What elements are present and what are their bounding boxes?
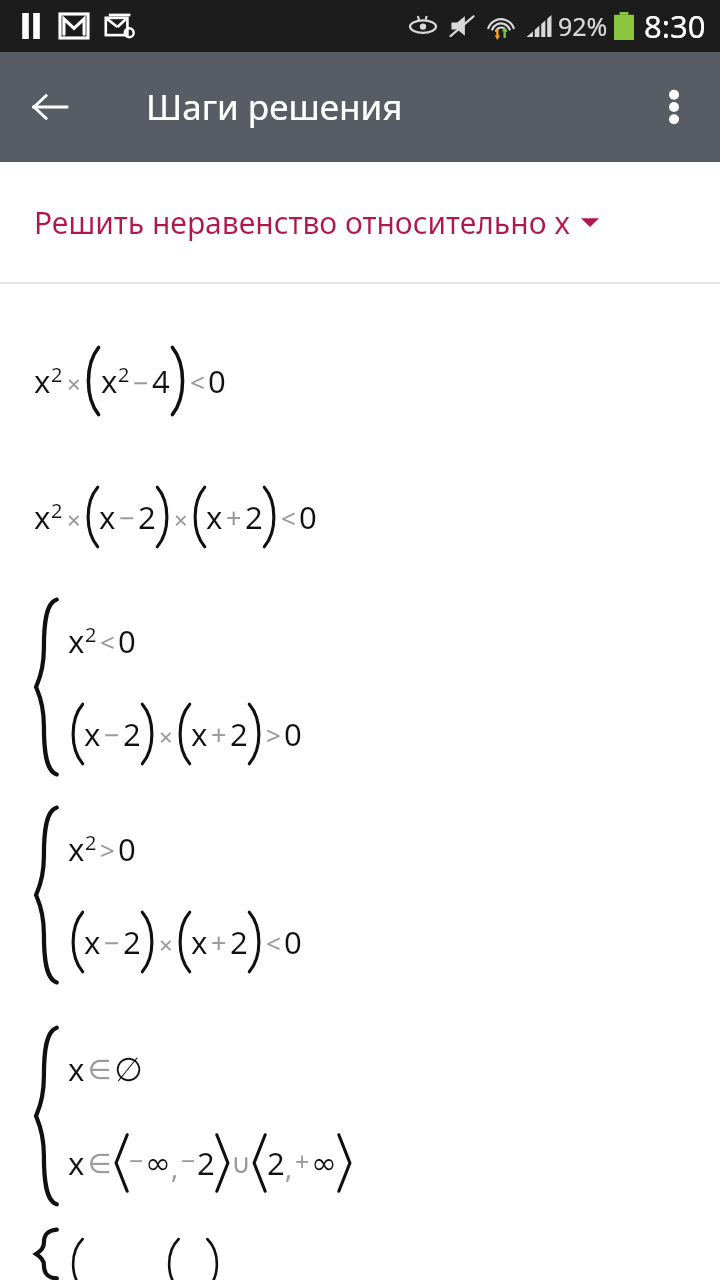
staticText: 2 (267, 1142, 285, 1184)
staticText: + (211, 716, 227, 753)
staticText: x (34, 496, 51, 538)
staticText: + (295, 1144, 310, 1178)
staticText: 2 (85, 621, 97, 648)
staticText: − (133, 364, 149, 401)
button[interactable] (0, 1228, 720, 1280)
staticText: ∈ (88, 1148, 112, 1179)
staticText: 2 (245, 496, 263, 538)
staticText: × (67, 367, 81, 400)
staticText: x (99, 496, 116, 538)
button[interactable]: More options (638, 71, 710, 143)
staticText: 0 (118, 620, 136, 662)
button[interactable]: x (0, 476, 720, 558)
staticText: 2 (51, 361, 63, 388)
staticText: 2 (85, 829, 97, 856)
staticText: < (281, 500, 296, 535)
staticText: > (266, 717, 281, 752)
staticText: < (100, 624, 115, 659)
staticText: ∞ (311, 1145, 337, 1181)
staticText: × (67, 503, 81, 536)
button[interactable]: x (0, 594, 720, 780)
button[interactable]: x (0, 1022, 720, 1210)
staticText: 0 (284, 713, 302, 755)
staticText: x (84, 713, 101, 755)
staticText: x (84, 921, 101, 963)
staticText: x (191, 921, 208, 963)
staticText: + (226, 499, 242, 536)
button[interactable]: Решить неравенство относительно x (0, 162, 720, 282)
staticText: 0 (208, 360, 226, 402)
staticText: − (119, 499, 135, 536)
staticText: x (191, 713, 208, 755)
staticText: x (34, 360, 51, 402)
staticText: x (101, 360, 118, 402)
staticText: 8:30 (644, 5, 706, 47)
staticText: , (171, 1149, 179, 1186)
staticText: 0 (299, 496, 317, 538)
staticText: 2 (118, 361, 130, 388)
staticText: 2 (123, 713, 141, 755)
staticText: 2 (230, 713, 248, 755)
staticText: 2 (230, 921, 248, 963)
button[interactable]: x (0, 340, 720, 422)
staticText: x (68, 620, 85, 662)
staticText: ∞ (145, 1145, 171, 1181)
staticText: 0 (118, 828, 136, 870)
staticText: − (129, 1143, 144, 1177)
staticText: 2 (123, 921, 141, 963)
staticText: 2 (51, 497, 63, 524)
button[interactable]: Back (14, 71, 86, 143)
staticText: x (68, 1142, 85, 1184)
staticText: ∅ (114, 1050, 143, 1088)
staticText: > (100, 832, 115, 867)
staticText: x (206, 496, 223, 538)
staticText: , (285, 1149, 293, 1186)
staticText: < (190, 364, 205, 399)
staticText: 4 (152, 360, 170, 402)
staticText: 2 (197, 1142, 215, 1184)
staticText: Решить неравенство относительно x (34, 202, 571, 243)
staticText: Шаги решения (146, 83, 403, 131)
button[interactable]: x (0, 802, 720, 988)
staticText: x (68, 828, 85, 870)
staticText: − (104, 924, 120, 961)
staticText: × (159, 720, 173, 753)
staticText: + (211, 924, 227, 961)
staticText: × (159, 928, 173, 961)
staticText: ∈ (88, 1054, 112, 1085)
staticText: 0 (284, 921, 302, 963)
staticText: ∪ (231, 1148, 251, 1179)
staticText: × (174, 503, 188, 536)
staticText: 92% (558, 9, 608, 43)
staticText: 2 (138, 496, 156, 538)
staticText: x (68, 1048, 85, 1090)
staticText: − (181, 1143, 196, 1177)
staticText: − (104, 716, 120, 753)
staticText: < (266, 925, 281, 960)
